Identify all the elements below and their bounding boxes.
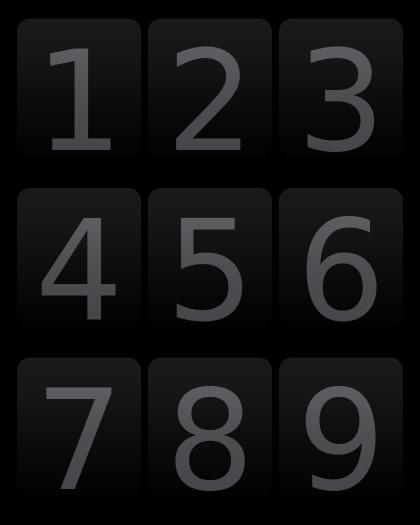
button[interactable] bbox=[279, 188, 403, 327]
button[interactable] bbox=[148, 188, 272, 327]
button[interactable] bbox=[148, 18, 272, 157]
button[interactable] bbox=[279, 18, 403, 157]
button[interactable] bbox=[279, 357, 403, 496]
button[interactable] bbox=[17, 188, 141, 327]
button[interactable] bbox=[148, 357, 272, 496]
button[interactable] bbox=[17, 357, 141, 496]
button[interactable] bbox=[17, 18, 141, 157]
